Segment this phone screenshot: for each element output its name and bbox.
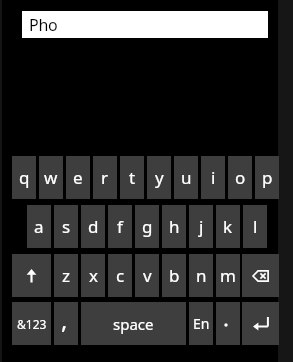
button[interactable]: w bbox=[39, 156, 63, 199]
button[interactable]: g bbox=[135, 205, 159, 248]
button[interactable]: l bbox=[243, 205, 267, 248]
button[interactable]: p bbox=[255, 156, 279, 199]
button[interactable] bbox=[242, 302, 279, 345]
button[interactable]: z bbox=[54, 254, 78, 297]
button[interactable]: x bbox=[81, 254, 105, 297]
staticText: u bbox=[181, 166, 192, 189]
staticText: m bbox=[220, 264, 236, 287]
staticText: t bbox=[129, 166, 136, 189]
staticText: v bbox=[143, 264, 152, 287]
staticText: x bbox=[89, 264, 98, 287]
staticText: r bbox=[101, 166, 109, 189]
button[interactable] bbox=[242, 254, 279, 297]
button[interactable]: y bbox=[147, 156, 171, 199]
button[interactable]: k bbox=[216, 205, 240, 248]
staticText: p bbox=[262, 166, 273, 189]
staticText: c bbox=[116, 264, 125, 287]
button[interactable]: o bbox=[228, 156, 252, 199]
staticText: j bbox=[199, 215, 204, 238]
button[interactable]: u bbox=[174, 156, 198, 199]
staticText: d bbox=[88, 215, 99, 238]
button[interactable]: h bbox=[162, 205, 186, 248]
staticText: k bbox=[223, 215, 233, 238]
button[interactable] bbox=[12, 254, 51, 297]
button[interactable]: Pho bbox=[22, 11, 268, 38]
staticText: w bbox=[44, 166, 58, 189]
button[interactable]: f bbox=[108, 205, 132, 248]
button[interactable]: v bbox=[135, 254, 159, 297]
staticText: y bbox=[155, 166, 164, 189]
staticText: En bbox=[193, 314, 210, 333]
staticText: Pho bbox=[29, 14, 58, 36]
staticText: s bbox=[62, 215, 71, 238]
staticText: g bbox=[142, 215, 153, 238]
staticText: e bbox=[73, 166, 83, 189]
button[interactable]: space bbox=[81, 302, 186, 345]
staticText: o bbox=[235, 166, 246, 189]
staticText: h bbox=[169, 215, 180, 238]
button[interactable]: t bbox=[120, 156, 144, 199]
staticText: q bbox=[19, 166, 30, 189]
staticText: z bbox=[62, 264, 70, 287]
staticText: space bbox=[113, 314, 154, 334]
staticText: , bbox=[61, 303, 68, 336]
button[interactable]: En bbox=[189, 302, 213, 345]
button[interactable]: n bbox=[189, 254, 213, 297]
button[interactable]: &123 bbox=[12, 302, 51, 345]
button[interactable]: j bbox=[189, 205, 213, 248]
staticText: n bbox=[196, 264, 207, 287]
button[interactable]: i bbox=[201, 156, 225, 199]
staticText: i bbox=[211, 166, 216, 189]
staticText: l bbox=[253, 215, 258, 238]
button[interactable]: c bbox=[108, 254, 132, 297]
button[interactable]: , bbox=[54, 302, 78, 345]
button[interactable]: a bbox=[27, 205, 51, 248]
button[interactable] bbox=[216, 302, 240, 345]
button[interactable]: d bbox=[81, 205, 105, 248]
staticText: a bbox=[34, 215, 44, 238]
button[interactable]: m bbox=[216, 254, 240, 297]
button[interactable]: b bbox=[162, 254, 186, 297]
button[interactable]: r bbox=[93, 156, 117, 199]
staticText: b bbox=[169, 264, 180, 287]
button[interactable]: s bbox=[54, 205, 78, 248]
staticText: &123 bbox=[17, 316, 47, 332]
button[interactable]: e bbox=[66, 156, 90, 199]
staticText: f bbox=[117, 215, 123, 238]
button[interactable]: q bbox=[12, 156, 36, 199]
